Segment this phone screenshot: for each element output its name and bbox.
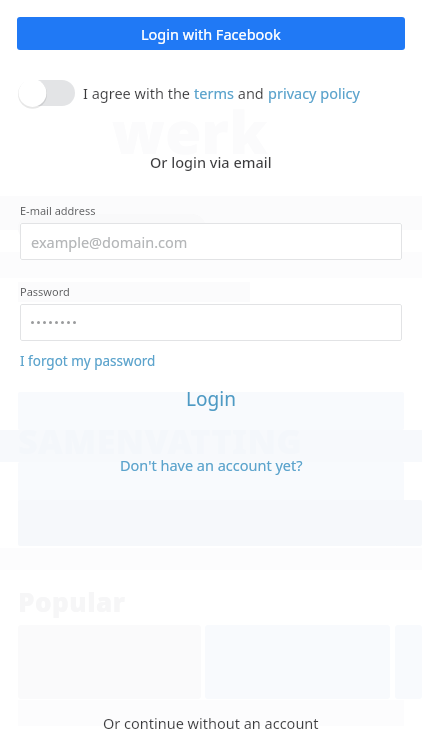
button[interactable]: Login with Facebook bbox=[17, 17, 405, 50]
staticText: example@domain.com bbox=[31, 232, 188, 252]
staticText: Or continue without an account bbox=[103, 713, 319, 733]
button[interactable]: Login bbox=[0, 383, 422, 415]
button[interactable]: Don't have an account yet? bbox=[0, 454, 422, 476]
staticText: SAMENVATTING bbox=[18, 418, 303, 464]
staticText: Or login via email bbox=[150, 152, 272, 172]
staticText: I agree with the bbox=[83, 83, 194, 103]
staticText: werk bbox=[112, 92, 269, 171]
button[interactable]: terms bbox=[194, 83, 234, 103]
button[interactable]: example@domain.com bbox=[20, 223, 402, 260]
button[interactable]: Agree with terms and privacy policy bbox=[17, 78, 77, 108]
staticText: Popular bbox=[18, 584, 126, 619]
staticText: E-mail address bbox=[20, 203, 96, 218]
button[interactable]: privacy policy bbox=[268, 83, 360, 103]
staticText: and bbox=[234, 83, 268, 103]
staticText: Login with Facebook bbox=[141, 24, 281, 44]
staticText: Password bbox=[20, 284, 70, 299]
staticText: Don't have an account yet? bbox=[120, 455, 303, 475]
staticText: Login bbox=[186, 386, 236, 412]
button[interactable] bbox=[20, 304, 402, 341]
button[interactable]: Or continue without an account bbox=[0, 704, 422, 742]
button[interactable]: I forgot my password bbox=[20, 352, 156, 370]
